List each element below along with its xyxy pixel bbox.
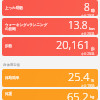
staticText: kg	[90, 94, 95, 99]
staticText: 20,161	[56, 37, 90, 52]
staticText: 13.8	[68, 18, 88, 32]
staticText: 25.4	[68, 69, 90, 84]
staticText: 今日 20:34	[81, 14, 95, 16]
staticText: 歩	[91, 46, 95, 51]
staticText: 今日 19:56	[81, 84, 95, 87]
staticText: 上った階数	[5, 6, 24, 11]
staticText: 体重	[5, 92, 13, 97]
button[interactable]: 体脂肪率	[2, 69, 98, 87]
staticText: %	[91, 78, 95, 83]
staticText: km	[89, 26, 95, 31]
staticText: 8	[84, 0, 90, 14]
staticText: 歩数	[5, 44, 13, 49]
staticText: 身体測定値	[3, 63, 20, 67]
staticText: ウォーキング+ランニング の距離	[5, 22, 48, 32]
staticText: 今日 20:34	[81, 52, 95, 56]
button[interactable]: ウォーキング+ランニング の距離	[2, 18, 98, 35]
staticText: 65.2	[67, 89, 89, 100]
staticText: 体脂肪率	[5, 76, 20, 81]
button[interactable]: 上った階数	[2, 0, 98, 16]
button[interactable]: 歩数	[2, 37, 98, 56]
button[interactable]: 体重	[2, 89, 98, 100]
staticText: 今日 20:34	[81, 32, 95, 35]
staticText: 階	[91, 8, 95, 13]
